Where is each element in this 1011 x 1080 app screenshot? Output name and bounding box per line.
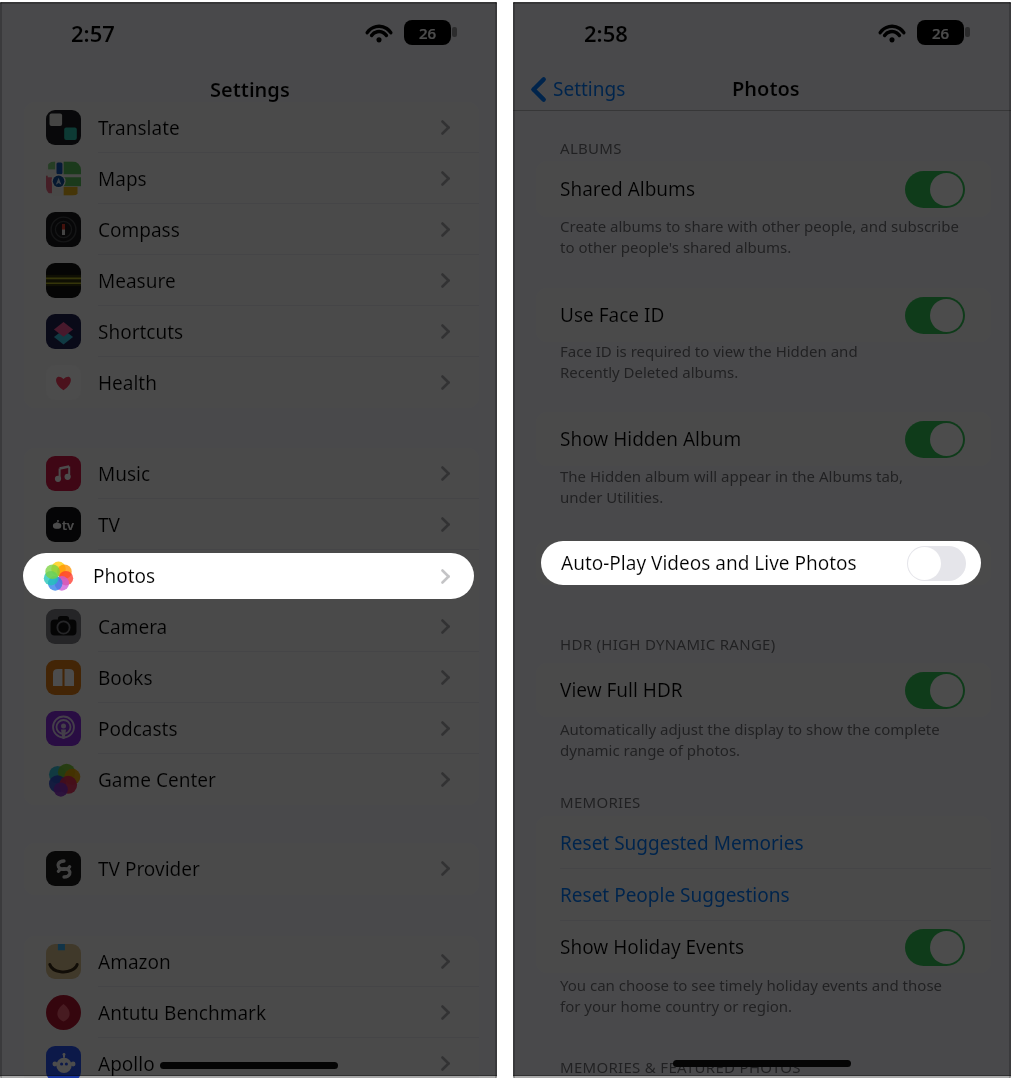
staticText: Photos xyxy=(732,75,800,102)
button[interactable]: Switch on xyxy=(905,929,965,966)
button[interactable]: Switch on xyxy=(905,297,965,334)
staticText: Reset Suggested Memories xyxy=(560,830,804,856)
button[interactable]: Switch on xyxy=(905,421,965,458)
button[interactable]: Switch on xyxy=(905,672,965,709)
button[interactable]: Compass xyxy=(24,204,479,255)
staticText: Reset People Suggestions xyxy=(560,882,790,908)
staticText: Compass xyxy=(98,217,180,243)
button[interactable]: Reset Suggested Memories xyxy=(536,816,991,869)
staticText: Show Hidden Album xyxy=(560,426,742,452)
button[interactable]: Apollo xyxy=(24,1038,479,1078)
staticText: Show Holiday Events xyxy=(560,934,745,960)
staticText: Shared Albums xyxy=(560,176,695,202)
staticText: ALBUMS xyxy=(560,138,622,158)
staticText: The Hidden album will appear in the Albu… xyxy=(560,466,904,508)
staticText: HDR (HIGH DYNAMIC RANGE) xyxy=(560,634,776,654)
button[interactable]: Photos xyxy=(23,553,474,599)
staticText: MEMORIES & FEATURED PHOTOS xyxy=(560,1057,801,1077)
button[interactable]: Maps xyxy=(24,153,479,204)
button[interactable]: Reset People Suggestions xyxy=(536,869,991,921)
staticText: Translate xyxy=(98,115,180,141)
staticText: Game Center xyxy=(98,767,216,793)
staticText: Use Face ID xyxy=(560,302,665,328)
button[interactable]: Shared Albums xyxy=(536,161,991,217)
staticText: Auto-Play Videos and Live Photos xyxy=(561,550,857,576)
button[interactable]: Auto-Play Videos and Live Photos xyxy=(541,541,981,585)
button[interactable]: Use Face ID xyxy=(536,288,991,342)
staticText: Health xyxy=(98,370,157,396)
button[interactable]: Back to Settings xyxy=(532,76,626,102)
staticText: Antutu Benchmark xyxy=(98,1000,267,1026)
staticText: Maps xyxy=(98,166,147,192)
button[interactable]: Game Center xyxy=(24,754,479,805)
staticText: tv xyxy=(62,516,74,534)
button[interactable]: Translate xyxy=(24,102,479,153)
staticText: Measure xyxy=(98,268,176,294)
staticText: Books xyxy=(98,665,153,691)
staticText: TV Provider xyxy=(98,856,200,882)
button[interactable]: Show Hidden Album xyxy=(536,412,991,466)
button[interactable]: Auto-Play switch off xyxy=(907,546,966,581)
staticText: Face ID is required to view the Hidden a… xyxy=(560,341,858,383)
staticText: Settings xyxy=(210,76,290,103)
button[interactable]: Measure xyxy=(24,255,479,306)
staticText: Create albums to share with other people… xyxy=(560,216,959,258)
button[interactable]: tv xyxy=(24,499,479,550)
button[interactable] xyxy=(24,550,479,601)
button[interactable]: Amazon xyxy=(24,936,479,987)
button[interactable]: Camera xyxy=(24,601,479,652)
staticText: Photos xyxy=(93,563,156,589)
staticText: Camera xyxy=(98,614,168,640)
staticText: Automatically adjust the display to show… xyxy=(560,719,940,761)
button[interactable]: Shortcuts xyxy=(24,306,479,357)
staticText: Settings xyxy=(553,76,626,102)
staticText: 26 xyxy=(932,23,950,43)
button[interactable]: Music xyxy=(24,448,479,499)
button[interactable]: Antutu Benchmark xyxy=(24,987,479,1038)
staticText: MEMORIES xyxy=(560,792,641,812)
button[interactable]: Show Holiday Events xyxy=(536,921,991,973)
staticText: Amazon xyxy=(98,949,171,975)
staticText: Shortcuts xyxy=(98,319,184,345)
staticText: Podcasts xyxy=(98,716,178,742)
button[interactable]: TV Provider xyxy=(24,843,479,894)
staticText: 2:57 xyxy=(71,18,115,48)
button[interactable]: Health xyxy=(24,357,479,408)
staticText: 26 xyxy=(419,23,437,43)
staticText: Apollo xyxy=(98,1051,155,1077)
button[interactable]: Books xyxy=(24,652,479,703)
staticText: TV xyxy=(98,512,120,538)
staticText: 2:58 xyxy=(584,18,628,48)
button[interactable]: Switch on xyxy=(905,171,965,208)
staticText: View Full HDR xyxy=(560,677,683,703)
button[interactable]: View Full HDR xyxy=(536,663,991,717)
staticText: Music xyxy=(98,461,151,487)
staticText: You can choose to see timely holiday eve… xyxy=(560,975,943,1017)
button[interactable]: Podcasts xyxy=(24,703,479,754)
